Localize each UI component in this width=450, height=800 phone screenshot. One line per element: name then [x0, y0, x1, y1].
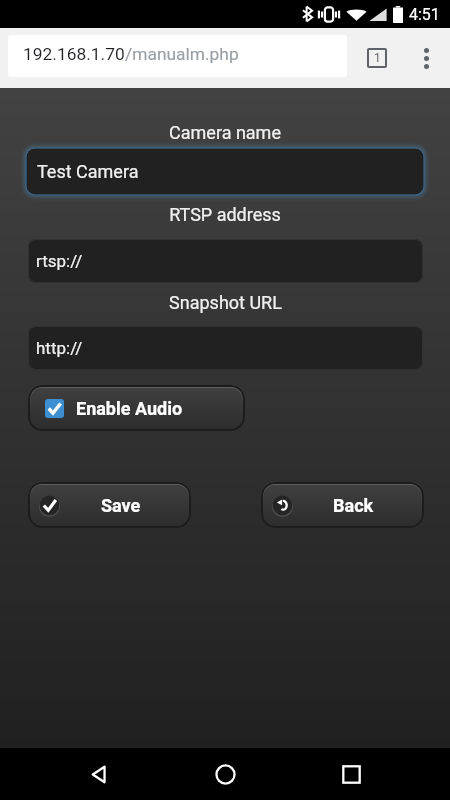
staticText: Camera name [169, 122, 281, 143]
button[interactable]: Test Camera [27, 149, 423, 194]
button[interactable]: Save [28, 482, 191, 528]
button[interactable]: rtsp:// [28, 239, 423, 283]
staticText: 4:51 [409, 5, 440, 24]
staticText: Test Camera [37, 161, 139, 182]
button[interactable]: More options [408, 40, 444, 76]
staticText: Save [101, 495, 141, 516]
staticText: 1 [374, 51, 381, 65]
staticText: Back [333, 495, 374, 516]
button[interactable]: Recents [327, 750, 375, 798]
button[interactable]: Tabs [360, 41, 394, 75]
button[interactable]: 192.168.1.70 [8, 35, 347, 77]
button[interactable]: Enable Audio [28, 385, 245, 431]
staticText: RTSP address [169, 204, 281, 225]
staticText: Enable Audio [76, 398, 183, 419]
button[interactable]: Back [261, 482, 424, 528]
staticText: http:// [36, 338, 83, 358]
staticText: /manualm.php [125, 44, 239, 64]
staticText: Snapshot URL [169, 292, 282, 313]
staticText: rtsp:// [36, 251, 83, 271]
button[interactable]: http:// [28, 326, 423, 370]
staticText: 192.168.1.70 [23, 44, 125, 64]
button[interactable]: Home [201, 750, 249, 798]
button[interactable]: Back [75, 750, 123, 798]
